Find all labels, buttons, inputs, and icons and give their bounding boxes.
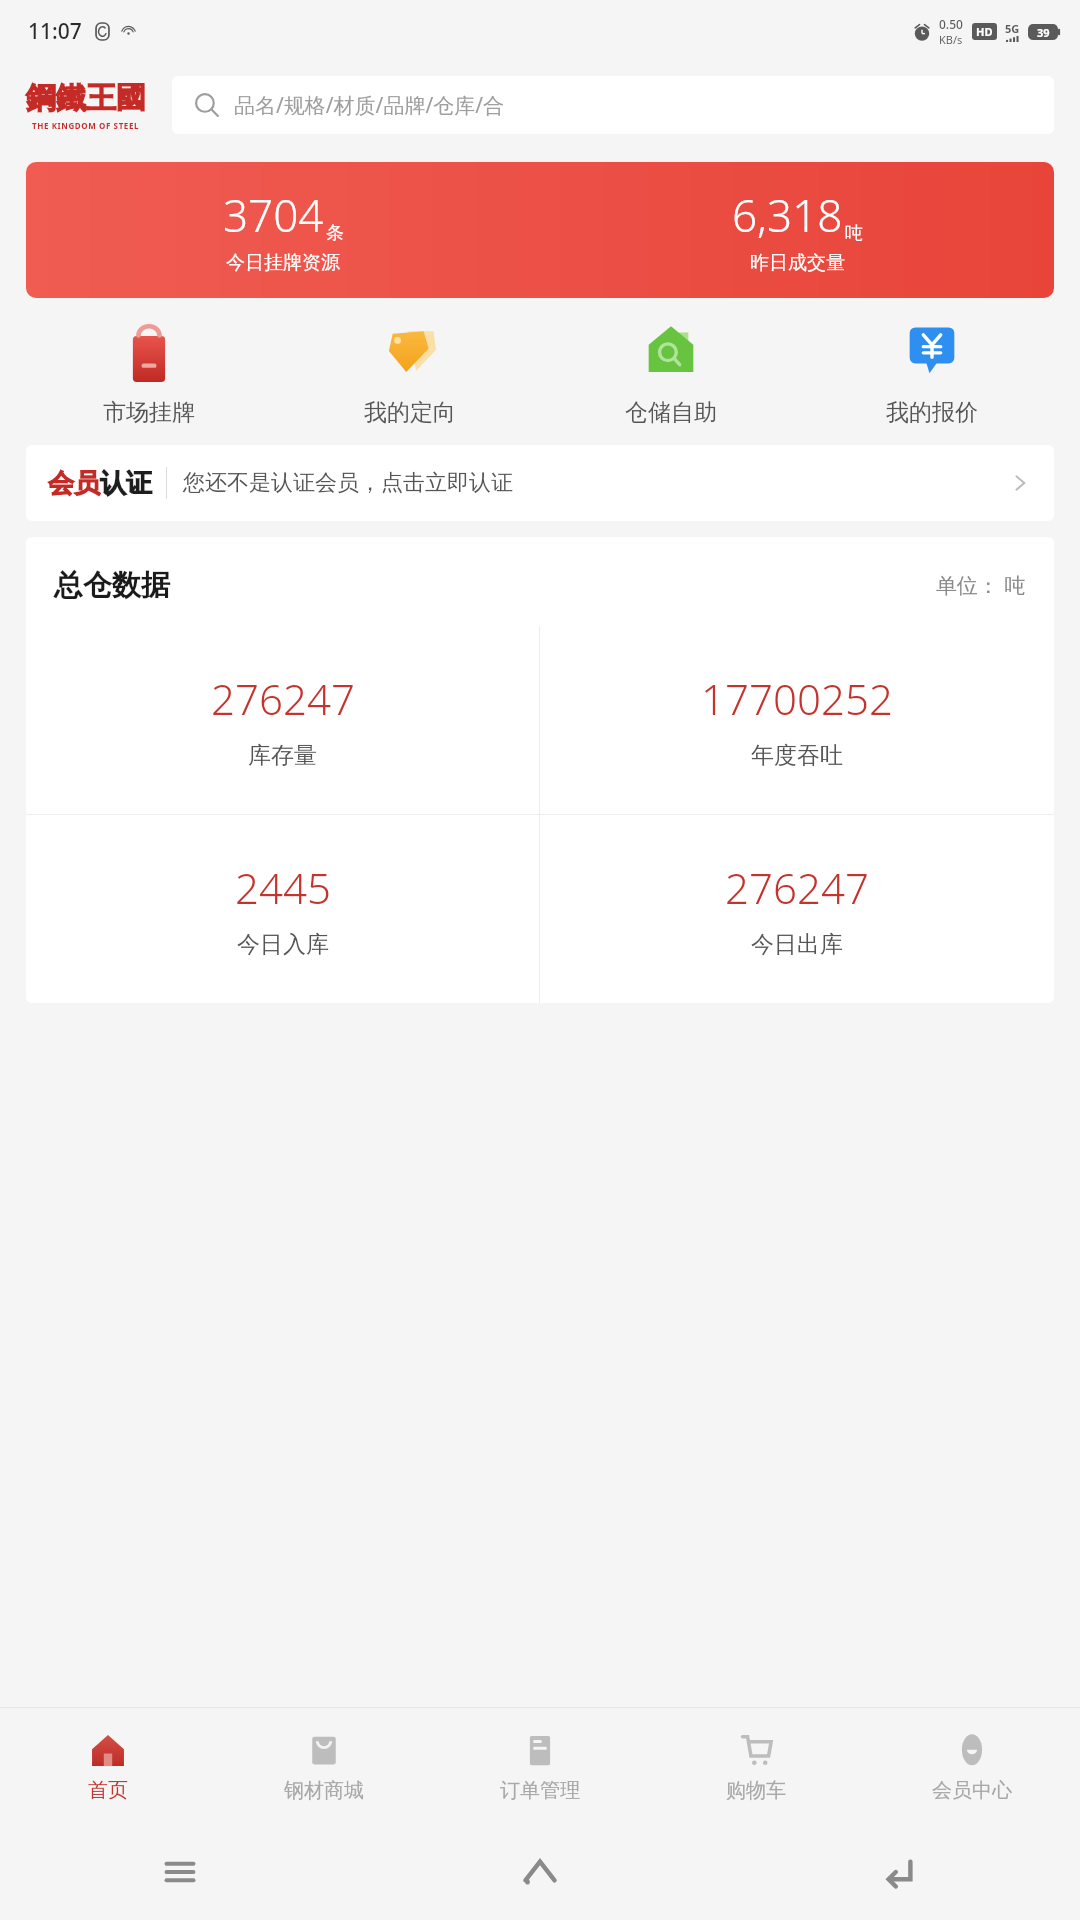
staticText: 钢材商城 xyxy=(284,1778,364,1803)
button[interactable]: 市场挂牌 xyxy=(18,316,279,431)
staticText: 您还不是认证会员，点击立即认证 xyxy=(183,469,513,497)
staticText: 今日入库 xyxy=(237,930,329,959)
staticText: 11:07 xyxy=(28,17,82,46)
staticText: 认证 xyxy=(100,467,152,500)
button[interactable]: Home xyxy=(514,1846,566,1898)
staticText: 39 xyxy=(1037,25,1050,40)
button[interactable]: 订单管理 xyxy=(432,1708,648,1824)
staticText: 订单管理 xyxy=(500,1778,580,1803)
staticText: 仓储自助 xyxy=(625,398,717,427)
staticText: 库存量 xyxy=(248,741,317,770)
button[interactable]: 钢材商城 xyxy=(216,1708,432,1824)
staticText: 今日挂牌资源 xyxy=(226,251,340,275)
staticText: 我的定向 xyxy=(364,398,456,427)
staticText: 购物车 xyxy=(726,1778,786,1803)
button[interactable]: 17700252 xyxy=(540,626,1054,814)
button[interactable]: 仓储自助 xyxy=(540,316,801,431)
staticText: HD xyxy=(976,24,993,39)
button[interactable]: 品名/规格/材质/品牌/仓库/合 xyxy=(172,76,1054,134)
button[interactable]: Back xyxy=(874,1846,926,1898)
staticText: 17700252 xyxy=(701,670,893,727)
staticText: 276247 xyxy=(725,859,869,916)
button[interactable]: 3704 xyxy=(26,162,1054,298)
staticText: 单位： 吨 xyxy=(936,571,1026,600)
staticText: 吨 xyxy=(845,222,863,245)
button[interactable]: 首页 xyxy=(0,1708,216,1824)
button[interactable]: 2445 xyxy=(26,815,539,1003)
staticText: 总仓数据 xyxy=(54,567,170,604)
staticText: 6,318 xyxy=(732,185,843,245)
staticText: 会员 xyxy=(48,467,100,500)
staticText: 市场挂牌 xyxy=(103,398,195,427)
staticText: 今日出库 xyxy=(751,930,843,959)
staticText: 首页 xyxy=(88,1778,128,1803)
staticText: 5G xyxy=(1005,21,1020,36)
button[interactable]: 会员 xyxy=(26,445,1054,521)
staticText: 276247 xyxy=(211,670,355,727)
staticText: 昨日成交量 xyxy=(750,251,845,275)
staticText: 会员中心 xyxy=(932,1778,1012,1803)
staticText: 条 xyxy=(326,222,344,245)
button[interactable]: 购物车 xyxy=(648,1708,864,1824)
staticText: 品名/规格/材质/品牌/仓库/合 xyxy=(234,91,505,120)
button[interactable]: 会员中心 xyxy=(864,1708,1080,1824)
staticText: KB/s xyxy=(939,32,963,47)
button[interactable]: 我的定向 xyxy=(279,316,540,431)
staticText: 鋼鐵王國 xyxy=(26,79,146,117)
button[interactable]: 276247 xyxy=(540,815,1054,1003)
button[interactable]: 276247 xyxy=(26,626,539,814)
staticText: 2445 xyxy=(235,859,331,916)
staticText: 0.50 xyxy=(939,16,963,32)
button[interactable]: Recent apps xyxy=(154,1846,206,1898)
staticText: 年度吞吐 xyxy=(751,741,843,770)
button[interactable]: 我的报价 xyxy=(801,316,1062,431)
staticText: THE KINGDOM OF STEEL xyxy=(32,120,140,131)
staticText: 我的报价 xyxy=(886,398,978,427)
staticText: 3704 xyxy=(223,185,324,245)
